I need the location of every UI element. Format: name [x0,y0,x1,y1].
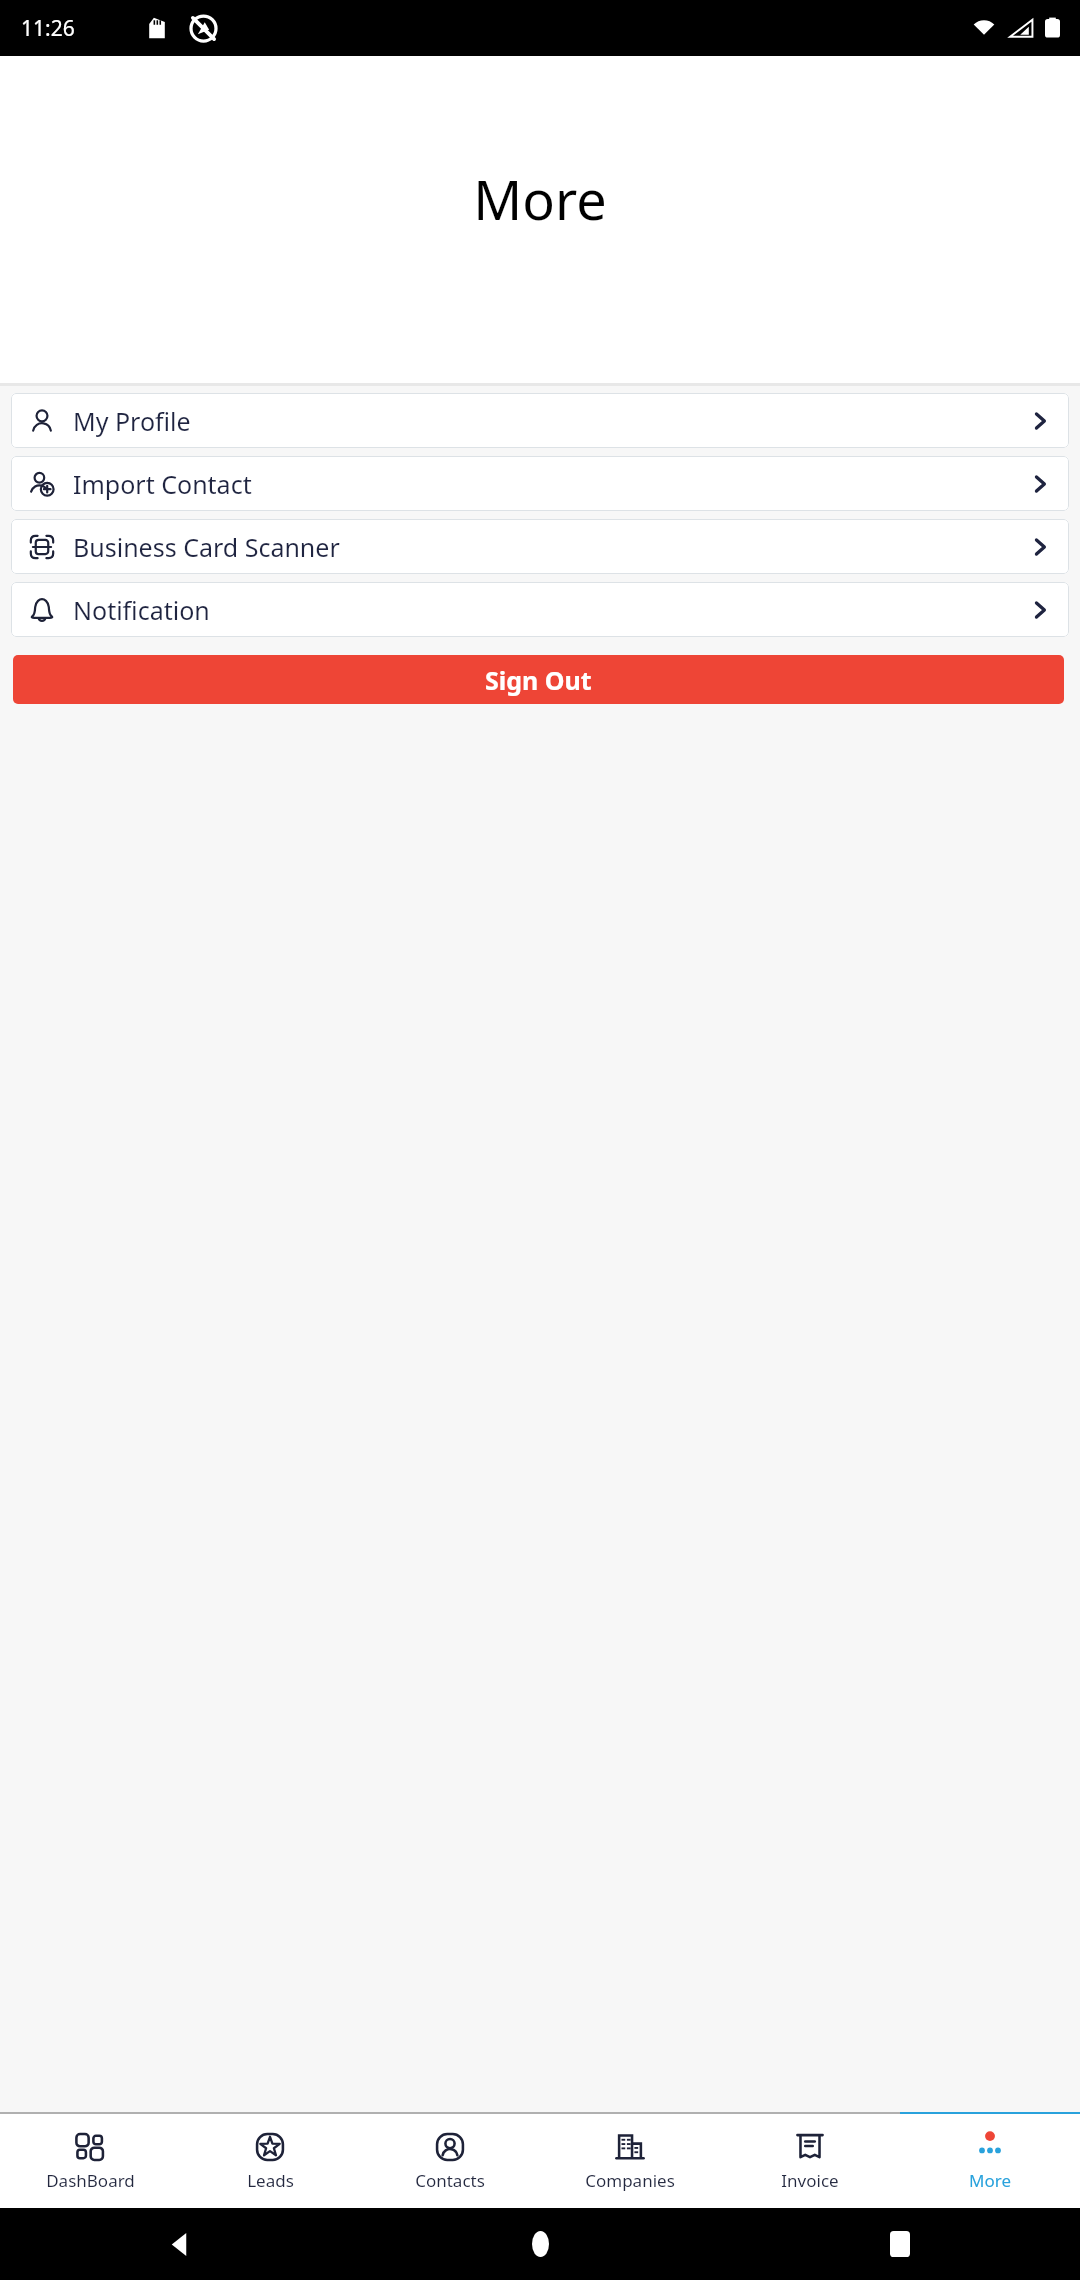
staticText: Companies [585,2169,675,2192]
button[interactable]: Sign Out [13,655,1064,704]
button[interactable]: Invoice [720,2114,900,2208]
staticText: My Profile [73,404,191,438]
staticText: DashBoard [46,2169,135,2192]
button[interactable]: My Profile [11,393,1069,448]
staticText: More [473,162,607,236]
button[interactable]: Notification [11,582,1069,637]
staticText: Leads [247,2169,294,2192]
other: More [973,2130,1007,2164]
button[interactable]: Business Card Scanner [11,519,1069,574]
staticText: Import Contact [73,467,252,501]
staticText: Sign Out [485,663,592,697]
other: Back [169,2233,192,2256]
other: Recents [890,2231,910,2257]
staticText: Notification [73,593,210,627]
staticText: More [969,2169,1011,2192]
button[interactable]: Import Contact [11,456,1069,511]
button[interactable]: Leads [180,2114,360,2208]
staticText: 11:26 [21,14,75,43]
other: Home [532,2231,549,2257]
staticText: Contacts [415,2169,485,2192]
staticText: Business Card Scanner [73,530,340,564]
staticText: Invoice [781,2169,839,2192]
button[interactable]: More [900,2114,1080,2208]
button[interactable]: Companies [540,2114,720,2208]
button[interactable]: DashBoard [0,2114,180,2208]
button[interactable]: Contacts [360,2114,540,2208]
